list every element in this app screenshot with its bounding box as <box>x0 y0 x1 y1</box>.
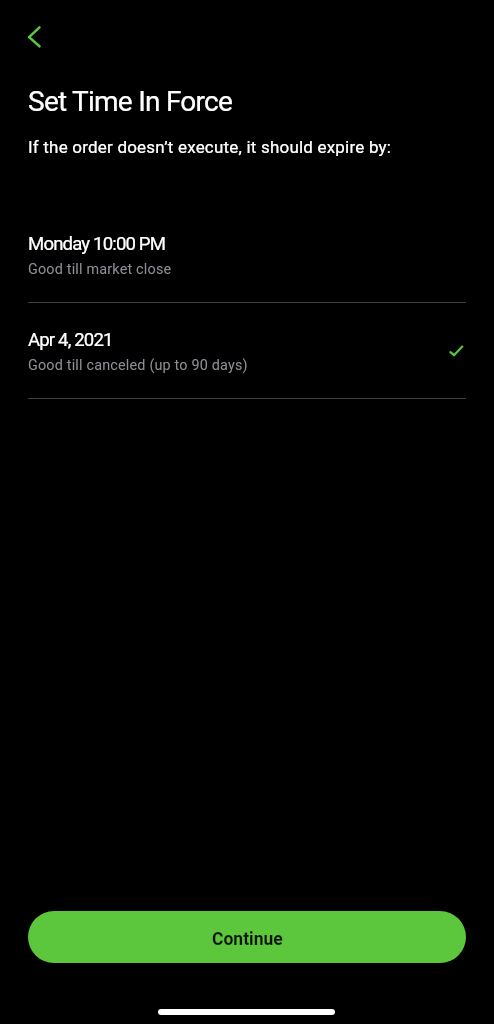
staticText: Continue <box>212 929 283 950</box>
button[interactable]: Monday 10:00 PM <box>0 228 494 302</box>
button[interactable]: Apr 4, 2021 <box>0 303 494 398</box>
staticText: If the order doesn’t execute, it should … <box>28 137 392 157</box>
staticText: Apr 4, 2021 <box>28 329 113 351</box>
staticText: Set Time In Force <box>28 85 233 118</box>
staticText: Good till canceled (up to 90 days) <box>28 357 248 374</box>
button[interactable]: Continue <box>28 911 466 963</box>
staticText: Monday 10:00 PM <box>28 233 166 255</box>
button[interactable]: Back <box>14 17 54 57</box>
staticText: Good till market close <box>28 261 172 278</box>
other: Selected <box>446 341 466 361</box>
